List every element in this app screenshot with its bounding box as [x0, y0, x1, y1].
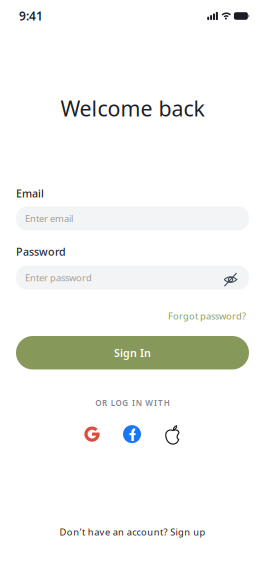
- staticText: 9:41: [19, 8, 43, 24]
- staticText: Password: [16, 244, 66, 259]
- staticText: Don’t have an account? Sign up: [59, 526, 205, 538]
- staticText: Welcome back: [60, 94, 204, 122]
- button[interactable]: Log in with Google: [84, 426, 100, 442]
- button[interactable]: Forgot password?: [168, 310, 246, 322]
- button[interactable]: Sign In: [16, 336, 249, 369]
- staticText: OR LOG IN WITH: [95, 397, 170, 408]
- staticText: Email: [16, 186, 44, 200]
- staticText: Sign In: [114, 346, 151, 360]
- button[interactable]: Log in with Apple: [164, 424, 181, 444]
- staticText: Enter password: [25, 271, 92, 284]
- staticText: Enter email: [25, 212, 73, 225]
- button[interactable]: Don’t have an account? Sign up: [59, 526, 205, 538]
- button[interactable]: Show password: [223, 271, 238, 285]
- staticText: Forgot password?: [168, 310, 246, 322]
- textField[interactable]: Enter email: [25, 212, 249, 225]
- button[interactable]: Log in with Facebook: [123, 425, 141, 443]
- textField[interactable]: Enter password: [25, 271, 223, 284]
